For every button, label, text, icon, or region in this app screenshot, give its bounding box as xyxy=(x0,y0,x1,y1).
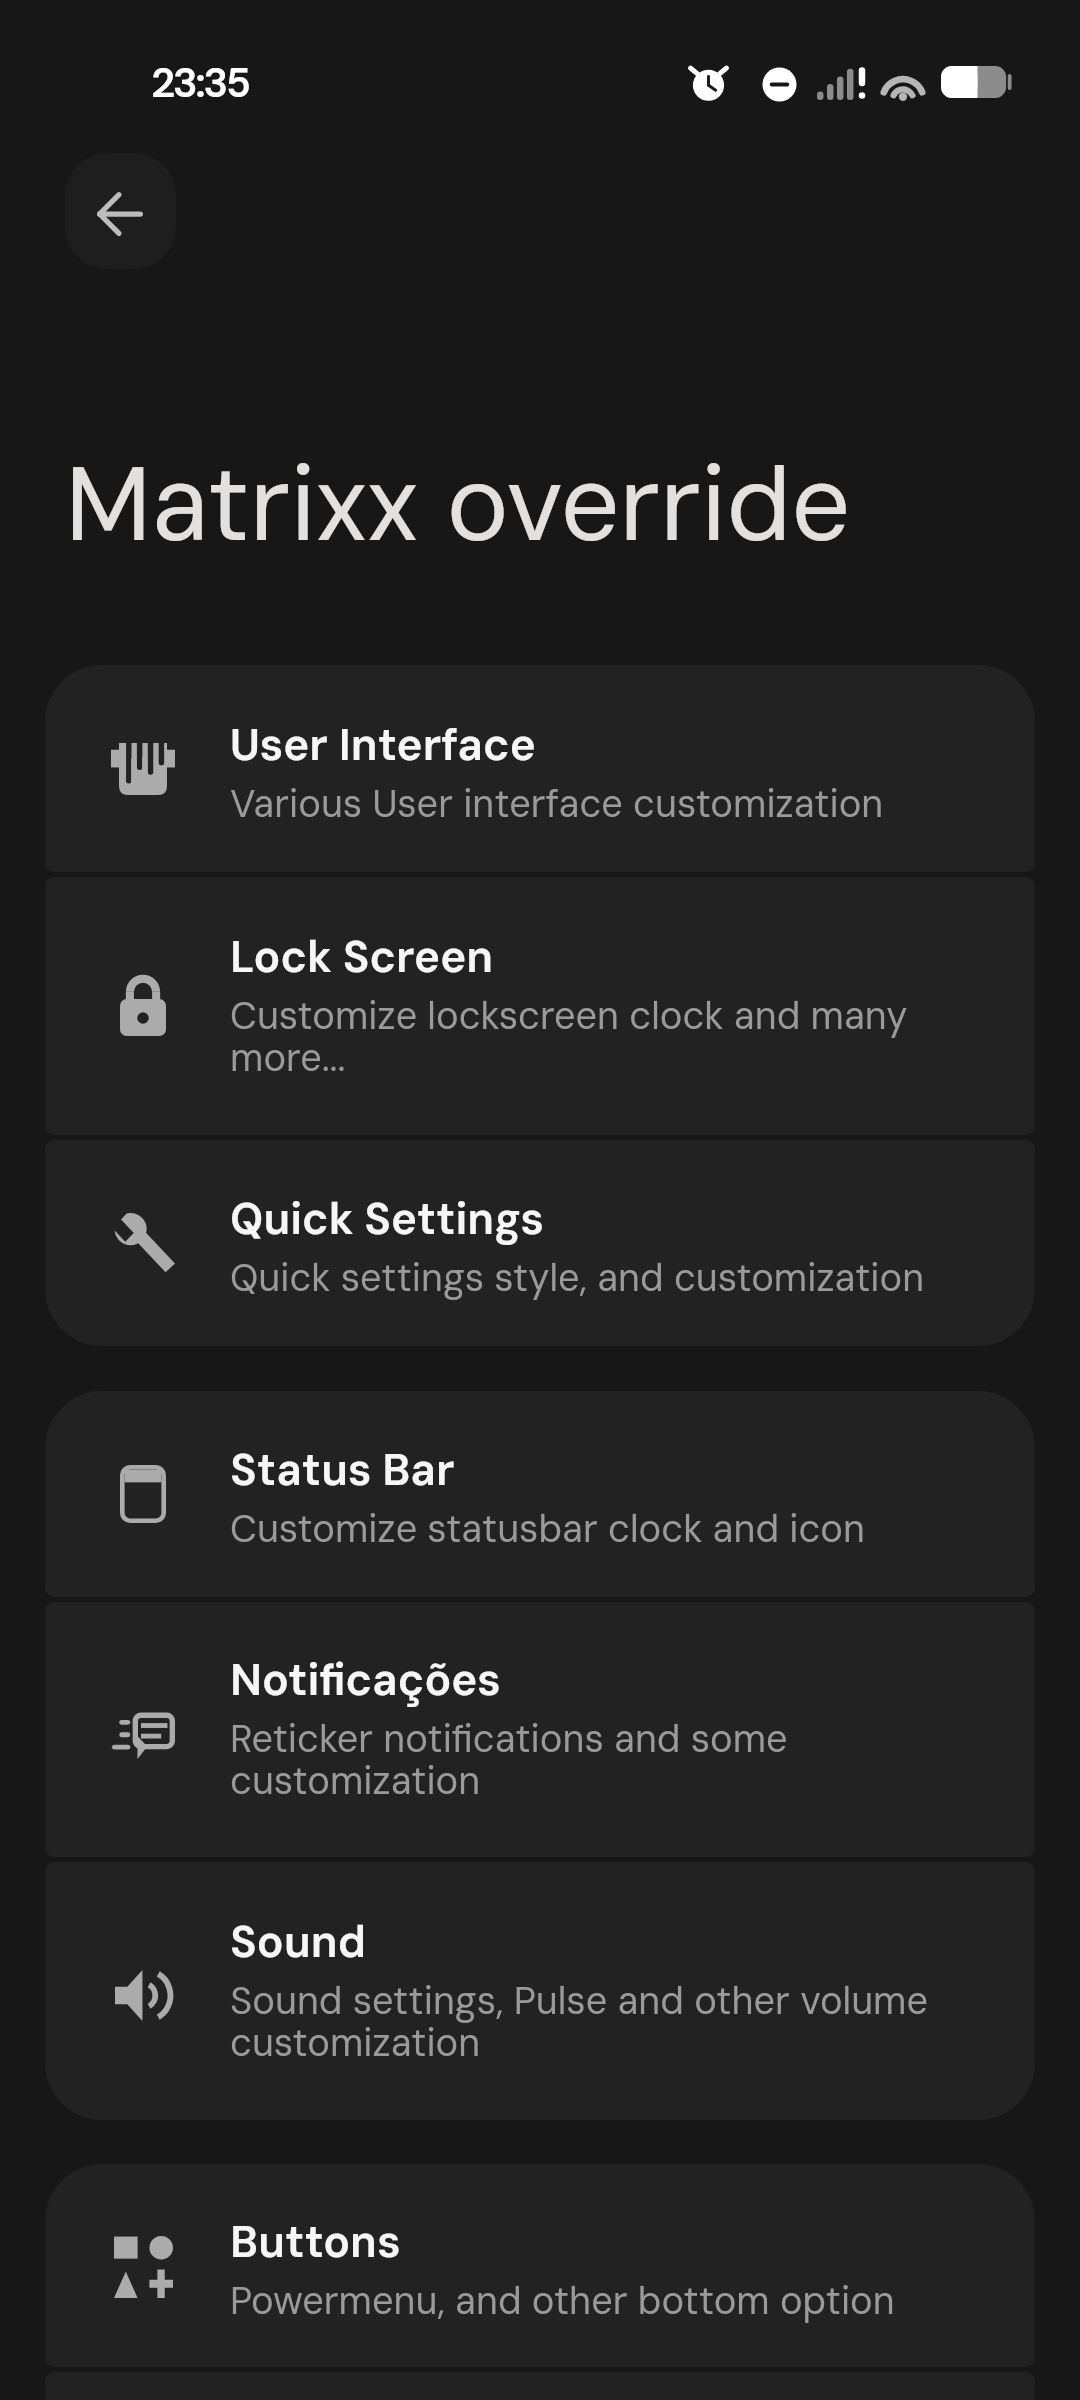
button[interactable]: Notificações xyxy=(45,1602,1035,1857)
staticText: Lock Screen xyxy=(230,928,494,985)
button[interactable]: Sound xyxy=(45,1862,1035,2120)
button[interactable]: Quick Settings xyxy=(45,1140,1035,1346)
staticText: 23:35 xyxy=(151,56,249,109)
button[interactable]: Lock Screen xyxy=(45,877,1035,1135)
staticText: Various User interface customization xyxy=(230,779,884,828)
staticText: Quick Settings xyxy=(230,1190,544,1247)
staticText: Customize statusbar clock and icon xyxy=(230,1504,866,1553)
staticText: Quick settings style, and customization xyxy=(230,1253,925,1302)
staticText: Powermenu, and other bottom option xyxy=(230,2276,895,2325)
staticText: Matrixx override xyxy=(65,436,851,572)
staticText: Status Bar xyxy=(230,1441,455,1498)
staticText: Sound xyxy=(230,1913,366,1970)
staticText: Sound settings, Pulse and other volume c… xyxy=(230,1976,990,2068)
button[interactable]: Buttons xyxy=(45,2164,1035,2367)
staticText: Customize lockscreen clock and many more… xyxy=(230,991,990,1083)
staticText: Buttons xyxy=(230,2213,401,2270)
staticText: User Interface xyxy=(230,716,536,773)
button[interactable]: Status Bar xyxy=(45,1391,1035,1597)
staticText: Notificações xyxy=(230,1651,501,1708)
staticText: Reticker notifications and some customiz… xyxy=(230,1714,990,1806)
button[interactable]: User Interface xyxy=(45,665,1035,872)
button[interactable]: Back xyxy=(65,153,176,269)
